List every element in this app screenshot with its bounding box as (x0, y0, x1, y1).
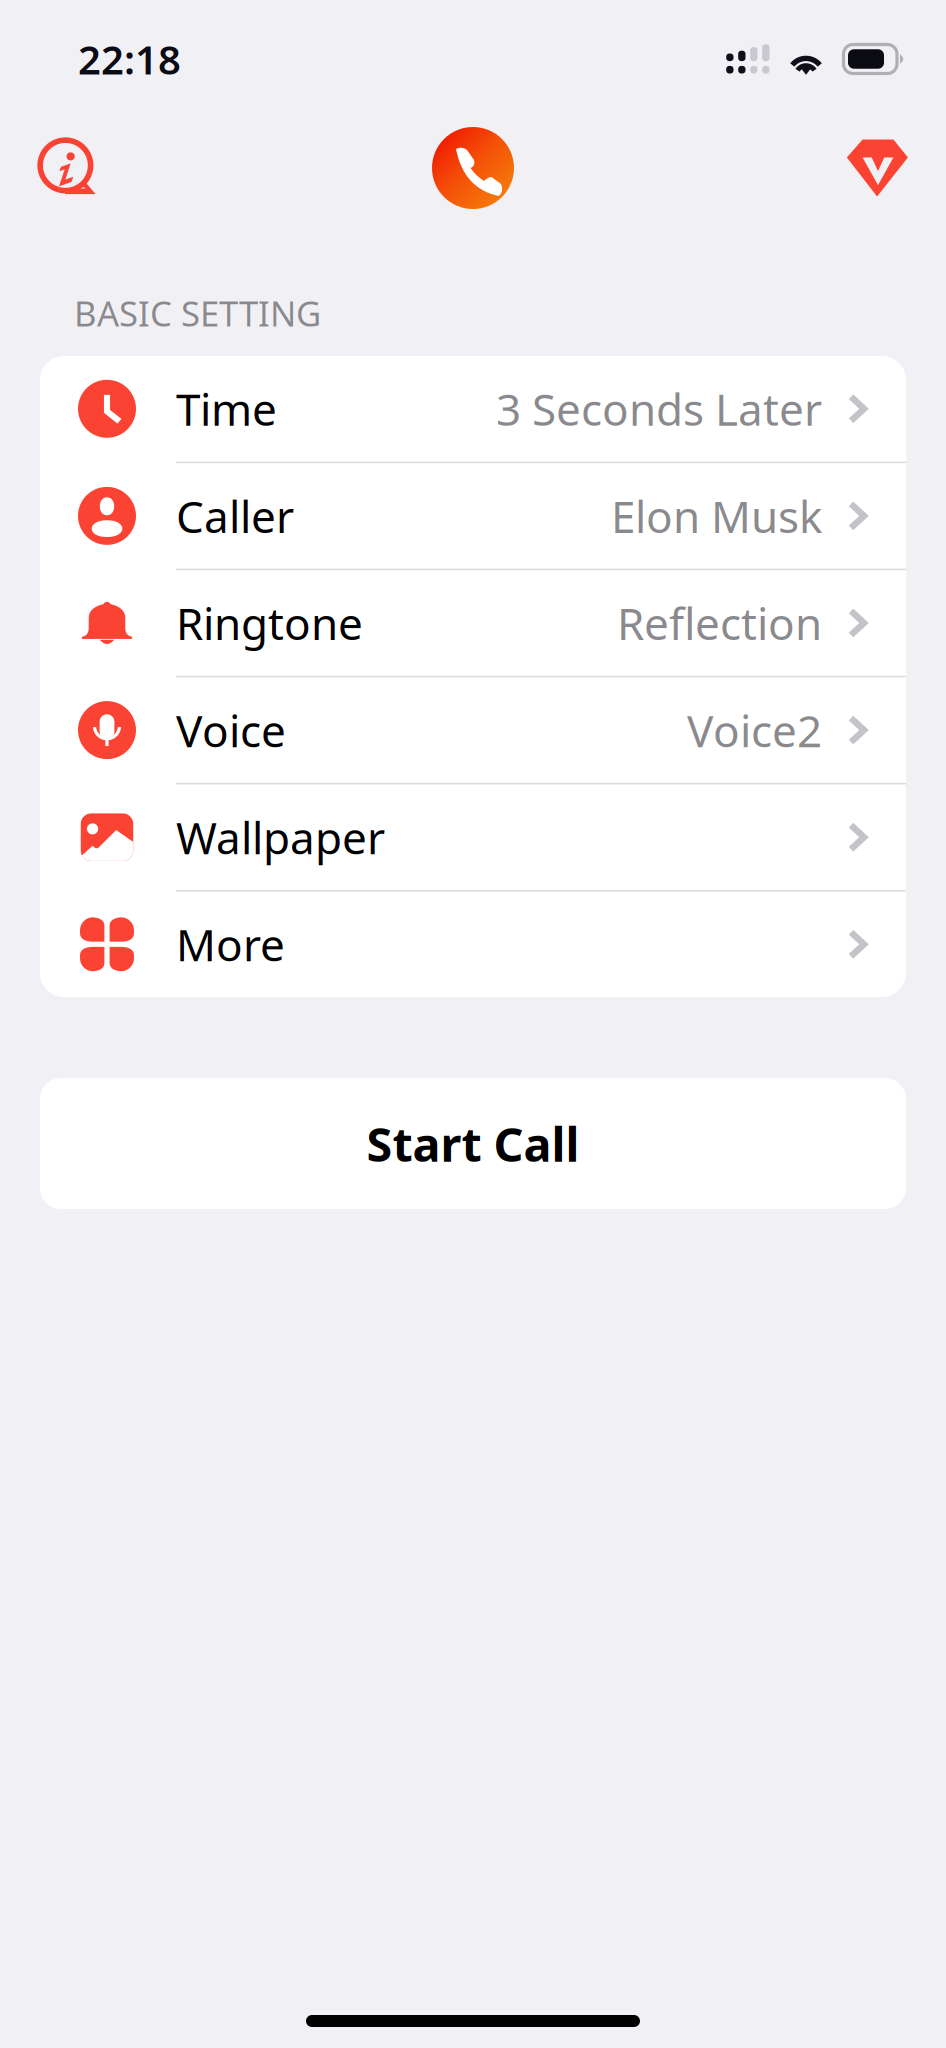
staticText: Reflection (617, 594, 822, 652)
staticText: 3 Seconds Later (496, 380, 822, 438)
staticText: Ringtone (176, 594, 363, 652)
button[interactable]: Caller (40, 463, 906, 569)
staticText: Time (176, 380, 277, 438)
staticText: Voice2 (687, 701, 822, 759)
staticText: More (176, 915, 285, 973)
staticText: Start Call (366, 1113, 579, 1175)
staticText: BASIC SETTING (74, 290, 321, 336)
button[interactable]: Fake Call (430, 125, 516, 211)
button[interactable]: More (40, 891, 906, 997)
button[interactable]: Help (25, 125, 111, 211)
staticText: Caller (176, 487, 294, 545)
staticText: Elon Musk (611, 487, 822, 545)
staticText: Wallpaper (176, 808, 385, 866)
staticText: Voice (176, 701, 286, 759)
button[interactable]: Ringtone (40, 570, 906, 676)
staticText: 22:18 (78, 32, 181, 85)
button[interactable]: Start Call (40, 1078, 906, 1209)
button[interactable]: Time (40, 356, 906, 461)
button[interactable]: Voice (40, 677, 906, 783)
button[interactable]: Wallpaper (40, 784, 906, 890)
button[interactable]: VIP (835, 125, 921, 211)
